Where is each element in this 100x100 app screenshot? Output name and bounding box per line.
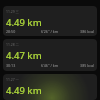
staticText: 11.29 三 [6,9,19,14]
button[interactable]: 11.29 三 [3,6,97,36]
staticText: 4.49 km [6,16,42,29]
staticText: 4.49 km [6,84,42,97]
staticText: 11.27 一 [6,77,19,82]
button[interactable]: 11.28 二 [3,39,97,71]
button[interactable]: 11.27 一 [3,74,97,100]
staticText: 4.47 km [6,49,42,62]
staticText: 30:13 [6,63,33,68]
staticText: 6'26" / km [33,29,66,33]
staticText: 28:50 [6,29,33,33]
staticText: 385 kcal [66,63,94,68]
staticText: 6'46" / km [33,63,66,68]
staticText: 386 kcal [66,29,94,33]
staticText: 11.28 二 [6,42,19,47]
